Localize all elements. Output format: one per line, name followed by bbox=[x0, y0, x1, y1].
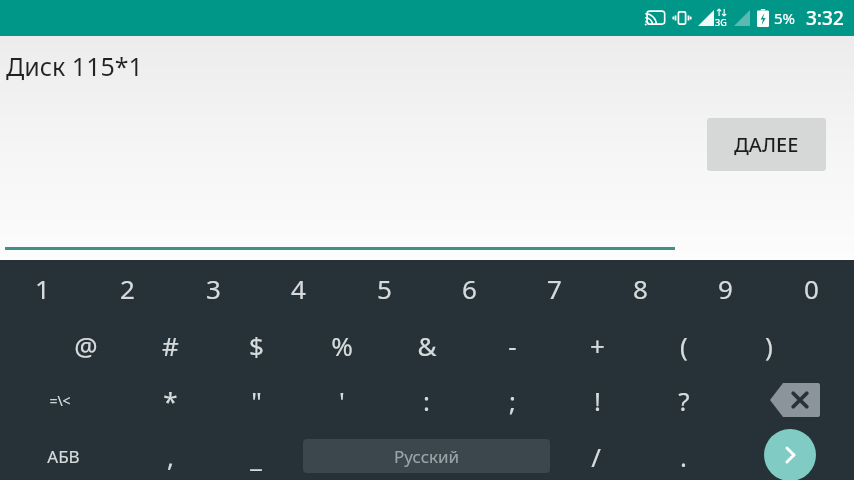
button[interactable]: / bbox=[553, 428, 638, 480]
button[interactable]: * bbox=[128, 372, 213, 428]
button[interactable]: Backspace bbox=[752, 372, 837, 428]
staticText: 4 bbox=[291, 271, 306, 306]
button[interactable]: , bbox=[128, 428, 213, 480]
staticText: АБВ bbox=[47, 445, 80, 468]
staticText: 3G bbox=[715, 16, 727, 28]
staticText: ( bbox=[680, 328, 688, 363]
staticText: 0 bbox=[804, 271, 819, 306]
staticText: % bbox=[331, 328, 353, 363]
staticText: 3:32 bbox=[806, 5, 844, 31]
button[interactable]: 6 bbox=[427, 260, 512, 316]
staticText: 9 bbox=[718, 271, 733, 306]
staticText: 8 bbox=[633, 271, 648, 306]
staticText: 5% bbox=[774, 8, 796, 28]
staticText: 2 bbox=[120, 271, 135, 306]
staticText: ДАЛЕЕ bbox=[734, 131, 799, 158]
staticText: $ bbox=[249, 328, 264, 363]
staticText: 5 bbox=[377, 271, 392, 306]
staticText: / bbox=[591, 439, 601, 474]
staticText: ; bbox=[509, 383, 516, 418]
staticText: Диск 115*1 bbox=[6, 49, 143, 83]
staticText: " bbox=[251, 383, 262, 418]
staticText: ' bbox=[339, 383, 345, 418]
staticText: ? bbox=[678, 383, 690, 418]
button[interactable]: # bbox=[128, 317, 213, 373]
button[interactable]: ? bbox=[641, 372, 726, 428]
button[interactable]: & bbox=[384, 317, 469, 373]
staticText: _ bbox=[250, 439, 262, 474]
staticText: =\< bbox=[49, 391, 71, 410]
button[interactable]: ( bbox=[641, 317, 726, 373]
staticText: & bbox=[417, 328, 437, 363]
button[interactable]: % bbox=[299, 317, 384, 373]
button[interactable]: _ bbox=[213, 428, 298, 480]
button[interactable]: ! bbox=[555, 372, 640, 428]
button[interactable]: " bbox=[214, 372, 299, 428]
staticText: + bbox=[590, 328, 605, 363]
button[interactable]: 4 bbox=[256, 260, 341, 316]
button[interactable]: 7 bbox=[512, 260, 597, 316]
staticText: 1 bbox=[35, 271, 50, 306]
button[interactable]: ; bbox=[470, 372, 555, 428]
staticText: ! bbox=[594, 383, 601, 418]
button[interactable]: ' bbox=[299, 372, 384, 428]
button[interactable]: 2 bbox=[85, 260, 170, 316]
button[interactable]: $ bbox=[214, 317, 299, 373]
staticText: * bbox=[163, 383, 178, 418]
button[interactable]: АБВ bbox=[21, 428, 106, 480]
staticText: . bbox=[680, 439, 687, 474]
button[interactable]: 1 bbox=[0, 260, 85, 316]
button[interactable]: ) bbox=[726, 317, 811, 373]
button[interactable]: @ bbox=[43, 317, 128, 373]
button[interactable]: 5 bbox=[342, 260, 427, 316]
button[interactable]: Русский bbox=[303, 439, 550, 473]
staticText: 7 bbox=[547, 271, 562, 306]
button[interactable]: - bbox=[470, 317, 555, 373]
button[interactable]: : bbox=[384, 372, 469, 428]
staticText: , bbox=[167, 439, 174, 474]
staticText: 6 bbox=[462, 271, 477, 306]
button[interactable]: 0 bbox=[769, 260, 854, 316]
button[interactable]: ДАЛЕЕ bbox=[707, 118, 826, 171]
button[interactable]: Enter bbox=[764, 429, 816, 480]
staticText: @ bbox=[74, 328, 98, 363]
button[interactable]: . bbox=[641, 428, 726, 480]
button[interactable]: + bbox=[555, 317, 640, 373]
staticText: # bbox=[162, 328, 179, 363]
button[interactable]: 9 bbox=[683, 260, 768, 316]
staticText: 3 bbox=[206, 271, 221, 306]
staticText: : bbox=[423, 383, 430, 418]
button[interactable]: 3 bbox=[171, 260, 256, 316]
staticText: Русский bbox=[394, 445, 460, 468]
staticText: ) bbox=[765, 328, 773, 363]
button[interactable]: =\< bbox=[17, 372, 102, 428]
button[interactable]: 8 bbox=[598, 260, 683, 316]
staticText: - bbox=[508, 328, 517, 363]
